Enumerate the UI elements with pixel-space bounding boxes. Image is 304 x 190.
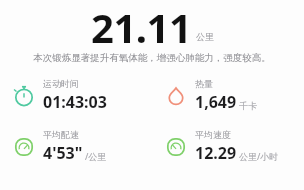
staticText: 本次锻炼显著提升有氧体能，增强心肺能力，强度较高。 bbox=[33, 52, 271, 64]
staticText: 公里 bbox=[196, 31, 214, 42]
staticText: 12.29 bbox=[195, 142, 237, 164]
staticText: 平均配速 bbox=[43, 129, 79, 140]
staticText: 21.11 bbox=[91, 0, 192, 46]
other: Average pace bbox=[12, 135, 36, 159]
staticText: 运动时间 bbox=[43, 78, 79, 89]
button[interactable]: Workout duration bbox=[0, 78, 152, 113]
other: Average speed bbox=[164, 135, 188, 159]
staticText: 千卡 bbox=[239, 100, 257, 111]
staticText: 热量 bbox=[195, 78, 213, 89]
button[interactable]: Calories bbox=[152, 78, 304, 113]
other: Calories bbox=[164, 84, 188, 108]
other: Workout duration bbox=[12, 84, 36, 108]
staticText: 4'53" bbox=[43, 142, 83, 164]
staticText: /公里 bbox=[85, 150, 107, 162]
button[interactable]: Average pace bbox=[0, 129, 152, 164]
staticText: 公里/小时 bbox=[239, 150, 279, 162]
button[interactable]: Average speed bbox=[152, 129, 304, 164]
staticText: 01:43:03 bbox=[43, 91, 107, 113]
staticText: 平均速度 bbox=[195, 129, 231, 140]
staticText: 1,649 bbox=[195, 91, 237, 113]
